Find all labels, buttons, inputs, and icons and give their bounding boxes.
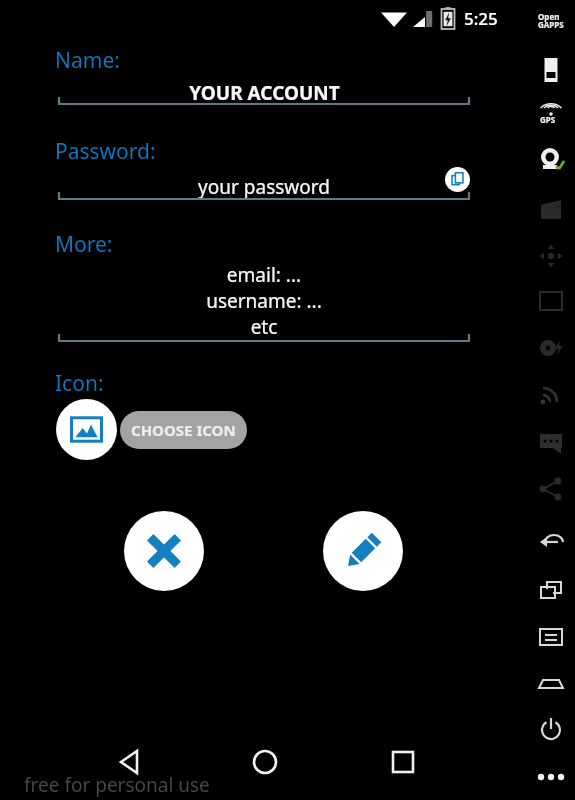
button[interactable]: Recent apps	[373, 745, 433, 795]
staticText: your password	[198, 174, 330, 198]
button[interactable]: Copy password	[445, 167, 470, 192]
staticText: 5:25	[464, 7, 498, 30]
button[interactable]: email: ... username: ... etc	[58, 262, 470, 341]
button[interactable]: Save	[323, 511, 403, 591]
staticText: email: ... username: ... etc	[206, 262, 322, 340]
button[interactable]: Back	[100, 745, 160, 795]
button[interactable]: Cancel	[124, 511, 204, 591]
button[interactable]: your password	[58, 174, 470, 198]
staticText: Name:	[55, 46, 120, 75]
staticText: free for personal use	[24, 772, 210, 798]
staticText: Icon:	[55, 369, 104, 398]
button[interactable]: Home	[235, 745, 295, 795]
button[interactable]: CHOOSE ICON	[120, 411, 247, 449]
staticText: More:	[55, 230, 113, 259]
button[interactable]: YOUR ACCOUNT	[58, 80, 470, 104]
button[interactable]: Current icon	[56, 399, 117, 460]
staticText: CHOOSE ICON	[131, 420, 236, 440]
staticText: YOUR ACCOUNT	[189, 80, 340, 104]
staticText: Password:	[55, 137, 156, 166]
staticText: GPS	[540, 114, 556, 125]
staticText: Open GAPPS	[538, 11, 564, 30]
